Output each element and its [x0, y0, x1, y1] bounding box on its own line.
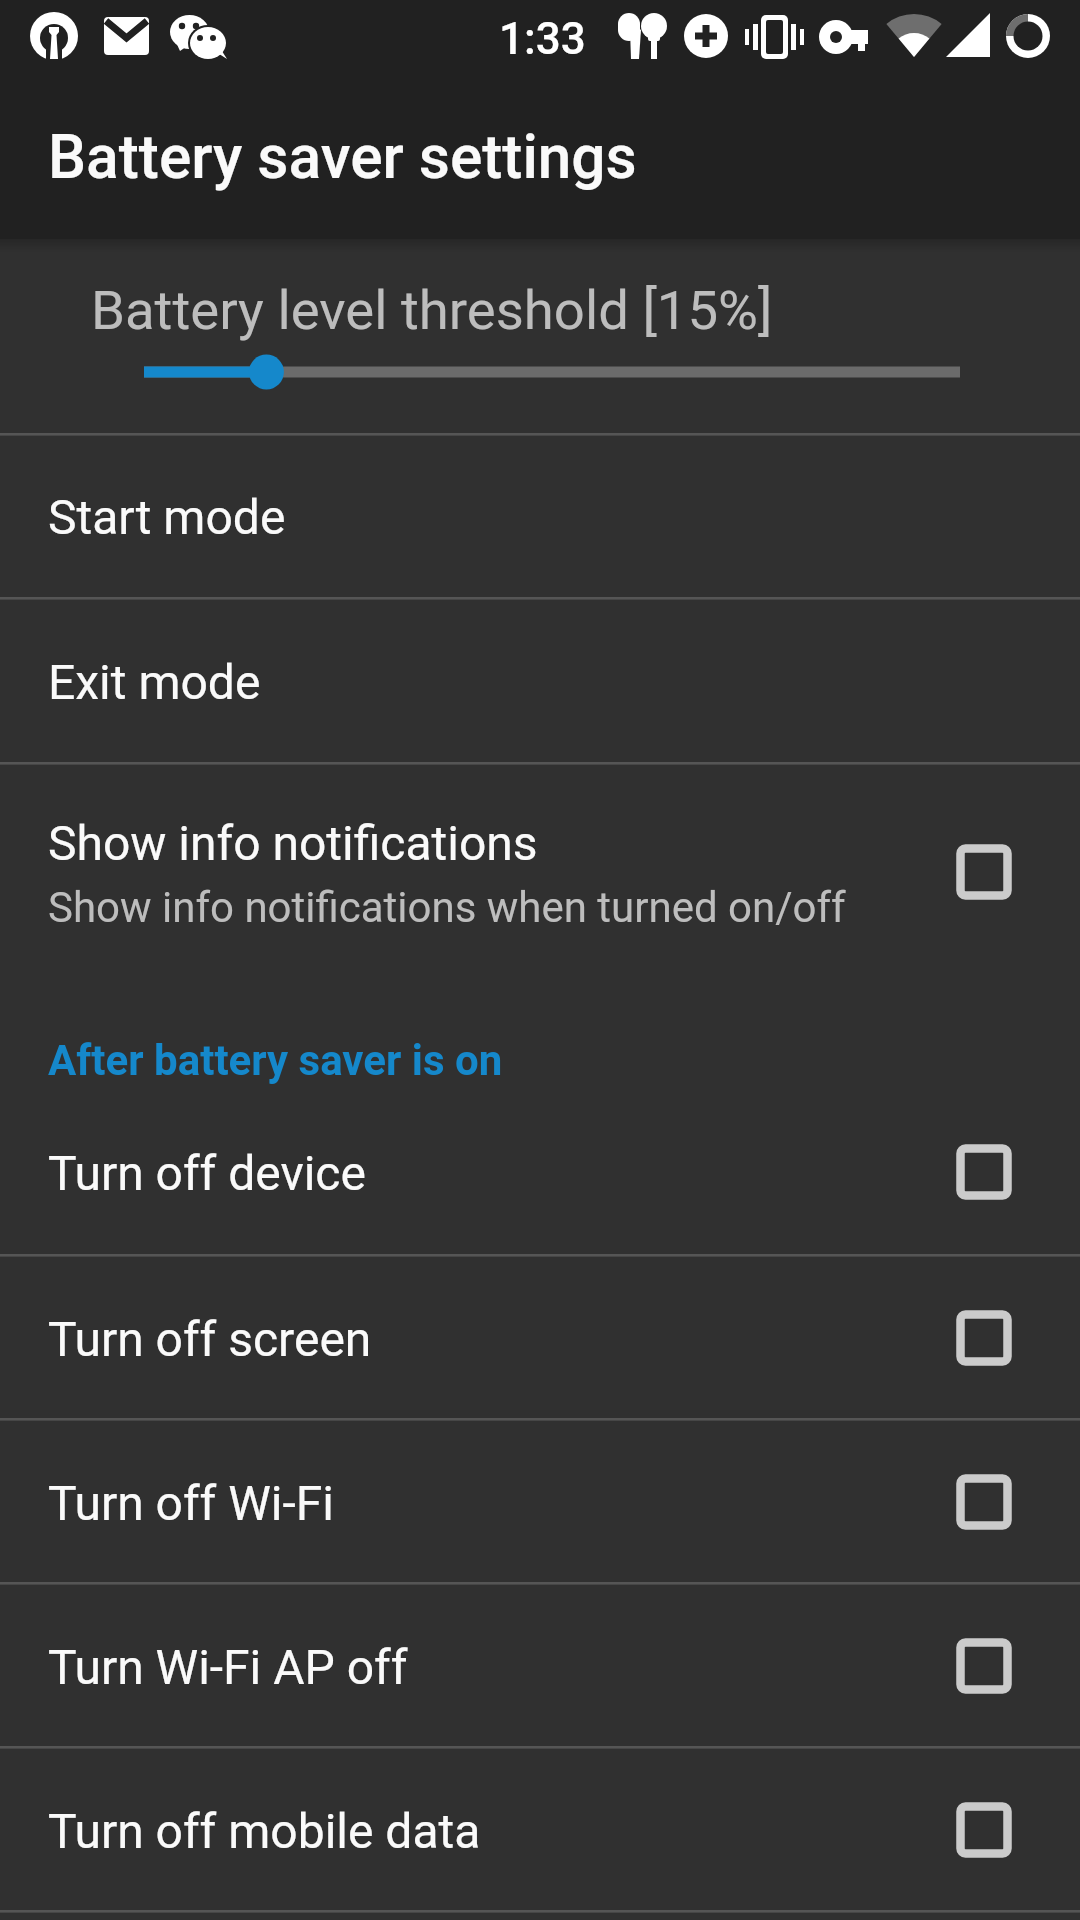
button[interactable]: Battery level threshold [15%] — [0, 239, 1080, 433]
staticText: Battery saver settings — [48, 122, 637, 193]
button[interactable]: Toggle checkbox — [955, 843, 1013, 901]
button[interactable]: Show info notifications — [0, 764, 1080, 1000]
staticText: Battery level threshold [15%] — [91, 278, 773, 342]
button[interactable]: Toggle checkbox — [955, 1801, 1013, 1859]
staticText: Turn off device — [48, 1145, 366, 1201]
staticText: After battery saver is on — [48, 1036, 503, 1085]
button[interactable]: Turn off mobile data — [0, 1748, 1080, 1910]
staticText: Show info notifications when turned on/o… — [48, 883, 846, 932]
button[interactable]: Start mode — [0, 435, 1080, 597]
button[interactable]: Toggle checkbox — [955, 1143, 1013, 1201]
staticText: Turn off Wi-Fi — [48, 1475, 334, 1531]
staticText: 1:33 — [499, 13, 586, 65]
button[interactable]: Turn off Wi-Fi — [0, 1420, 1080, 1582]
button[interactable]: Toggle checkbox — [955, 1473, 1013, 1531]
staticText: Turn Wi-Fi AP off — [48, 1639, 408, 1695]
staticText: Show info notifications — [48, 815, 538, 871]
button[interactable]: Turn off screen — [0, 1256, 1080, 1418]
button[interactable]: Exit mode — [0, 599, 1080, 762]
button[interactable]: Turn Wi-Fi AP off — [0, 1584, 1080, 1746]
button[interactable]: Toggle checkbox — [955, 1309, 1013, 1367]
staticText: Turn off screen — [48, 1311, 372, 1367]
button[interactable]: Toggle checkbox — [955, 1637, 1013, 1695]
staticText: Exit mode — [48, 654, 261, 710]
staticText: Turn off mobile data — [48, 1803, 481, 1859]
button[interactable]: Turn off device — [0, 1090, 1080, 1252]
staticText: Start mode — [48, 489, 286, 545]
